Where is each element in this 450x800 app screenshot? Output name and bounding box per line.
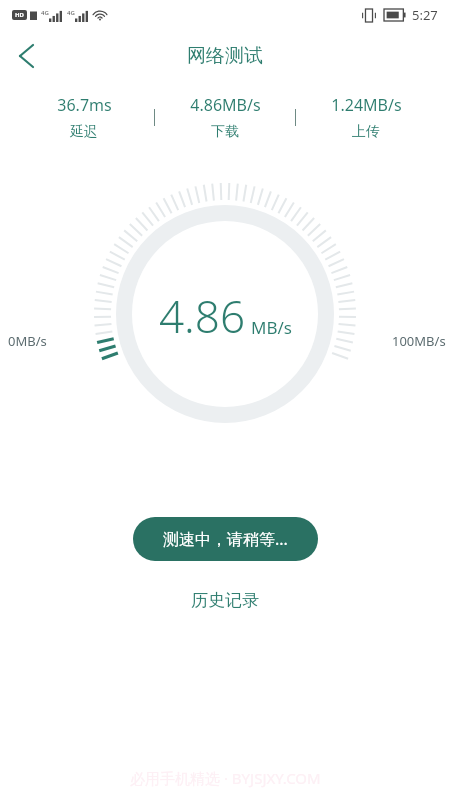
button[interactable]: 4.86MB/s [155,94,295,141]
staticText: 36.7ms [57,94,112,116]
staticText: 4.86 [159,286,246,346]
staticText: MB/s [251,316,292,339]
button[interactable]: 测速中，请稍等... [133,517,318,561]
staticText: 5:27 [412,6,438,24]
staticText: 4.86MB/s [190,94,261,116]
button[interactable]: Back [0,30,52,82]
staticText: 下载 [211,123,239,141]
staticText: 上传 [352,123,380,141]
staticText: 4G [67,9,75,17]
staticText: 历史记录 [191,590,259,611]
button[interactable]: 1.24MB/s [296,94,436,141]
button[interactable]: 36.7ms [14,94,154,141]
staticText: 0MB/s [8,332,47,350]
staticText: 100MB/s [392,332,446,350]
staticText: 延迟 [70,123,98,141]
staticText: 必用手机精选 · BYJSJXY.COM [130,768,321,788]
button[interactable]: 历史记录 [169,583,281,618]
staticText: 测速中，请稍等... [163,528,288,550]
staticText: 网络测试 [187,44,263,68]
staticText: 4G [41,9,49,17]
staticText: HD [15,11,24,19]
staticText: 1.24MB/s [331,94,402,116]
